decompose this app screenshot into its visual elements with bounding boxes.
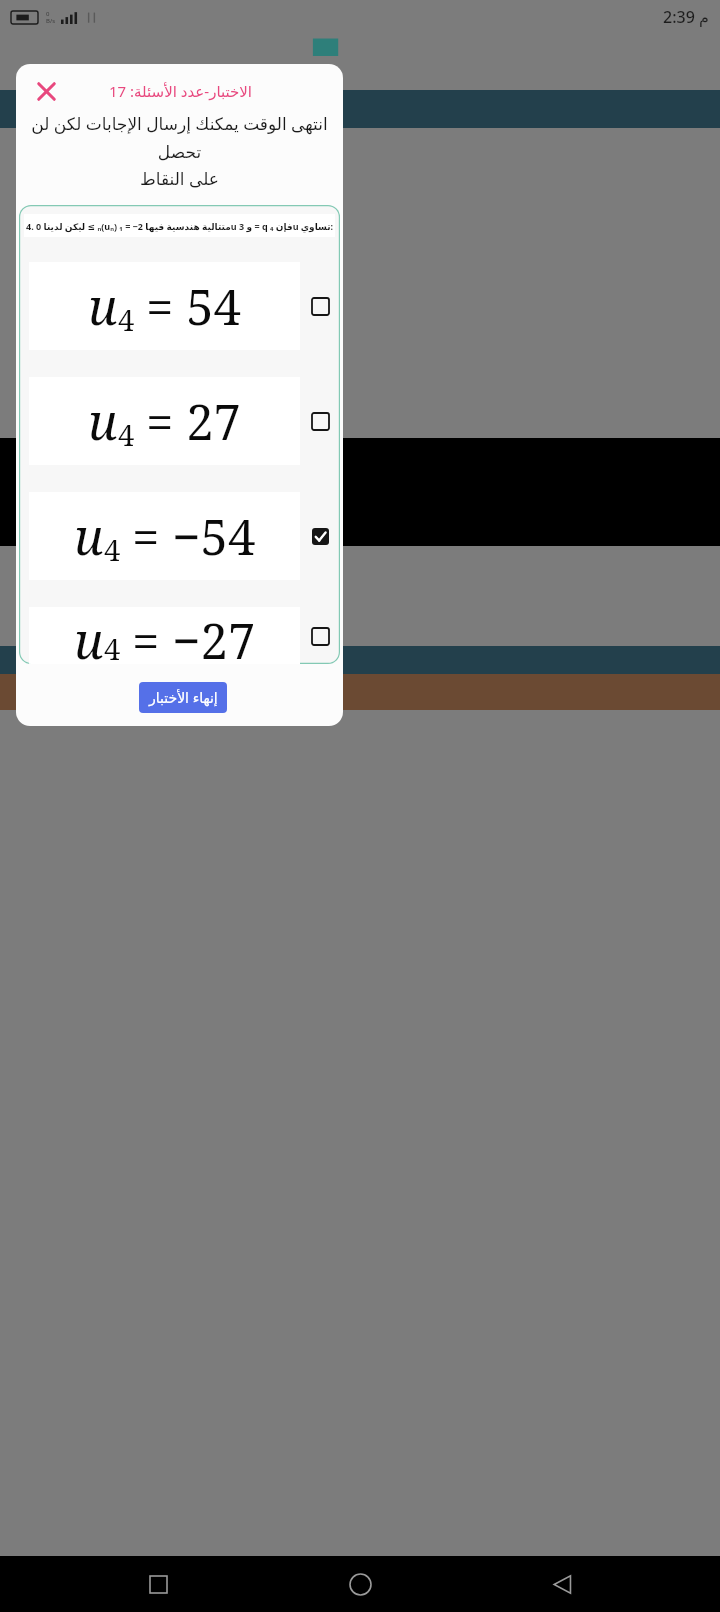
staticText: انتهى الوقت يمكنك إرسال الإجابات لكن لن …: [30, 112, 329, 190]
button[interactable]: Back: [538, 1560, 586, 1608]
button[interactable]: Home: [336, 1560, 384, 1608]
staticText: u: [74, 607, 104, 664]
staticText: 4. ليكن لدينا 0 ≤ ₙ(uₙ) متتالية هندسية ف…: [26, 220, 334, 232]
staticText: u: [88, 388, 118, 455]
staticText: 4: [104, 530, 121, 569]
staticText: = 54: [146, 273, 241, 340]
button[interactable]: إنهاء الأختبار: [139, 682, 227, 713]
button[interactable]: u: [29, 607, 331, 664]
staticText: = −54: [132, 503, 256, 570]
staticText: الاختبار-عدد الأسئلة: 17: [64, 81, 297, 101]
button[interactable]: u: [29, 262, 331, 350]
staticText: 4: [104, 629, 121, 664]
staticText: 4: [118, 300, 135, 339]
button[interactable]: u: [29, 492, 331, 580]
button[interactable]: Recents: [134, 1560, 182, 1608]
staticText: = 27: [146, 388, 241, 455]
staticText: 0 B/s: [46, 10, 56, 25]
staticText: 4: [118, 415, 135, 454]
staticText: u: [74, 503, 104, 570]
staticText: = −27: [132, 607, 256, 664]
staticText: م 2:39: [663, 6, 709, 28]
staticText: u: [88, 273, 118, 340]
button[interactable]: u: [29, 377, 331, 465]
button[interactable]: إغلاق: [28, 73, 64, 109]
staticText: إنهاء الأختبار: [149, 688, 218, 707]
